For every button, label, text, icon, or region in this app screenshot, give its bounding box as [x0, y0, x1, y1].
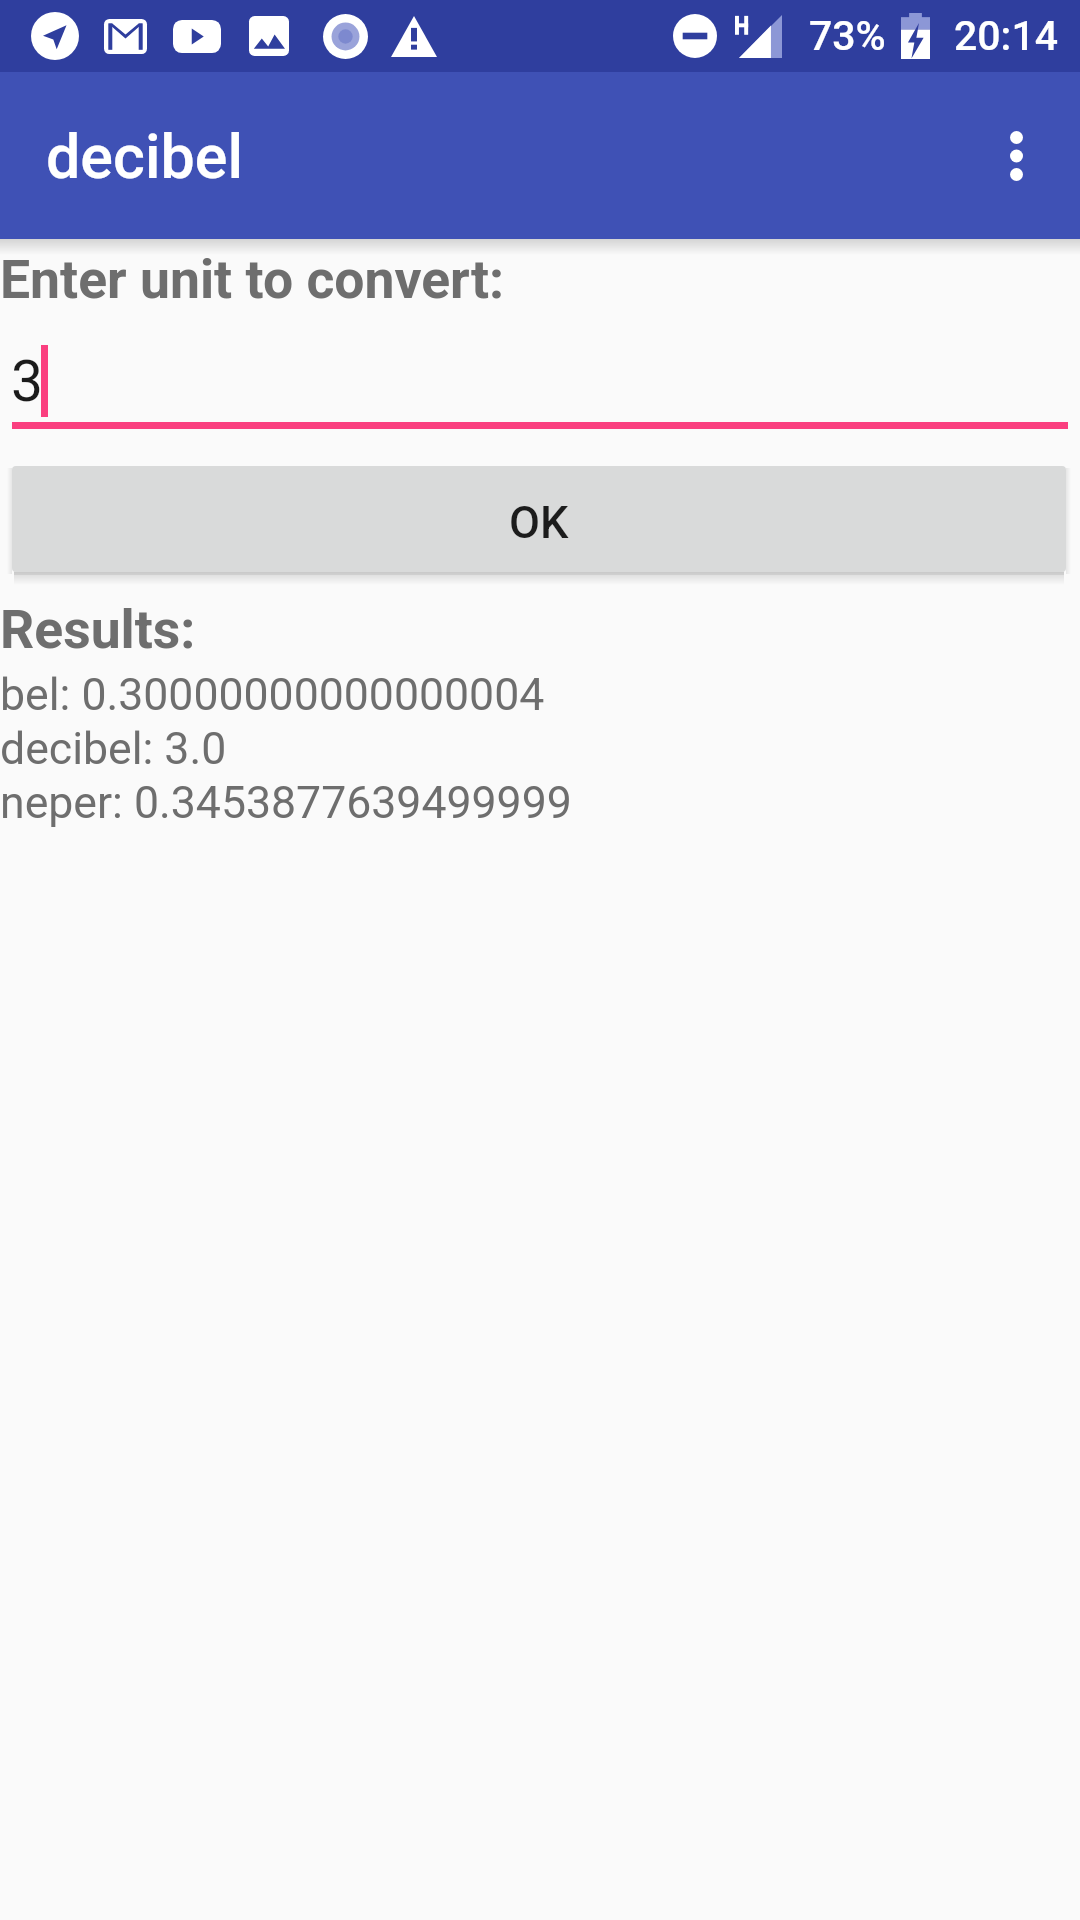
staticText: OK — [509, 496, 569, 549]
staticText: Results: — [0, 598, 196, 661]
button[interactable]: OK — [12, 466, 1066, 572]
staticText: 73% — [809, 12, 886, 60]
staticText: bel: 0.30000000000000004 decibel: 3.0 ne… — [0, 669, 572, 829]
button[interactable]: Unit input field — [0, 338, 1080, 429]
staticText: 20:14 — [954, 12, 1059, 60]
staticText: decibel — [46, 121, 243, 192]
staticText: 3 — [11, 348, 44, 415]
button[interactable]: More options — [968, 108, 1064, 204]
staticText: Enter unit to convert: — [0, 248, 505, 311]
